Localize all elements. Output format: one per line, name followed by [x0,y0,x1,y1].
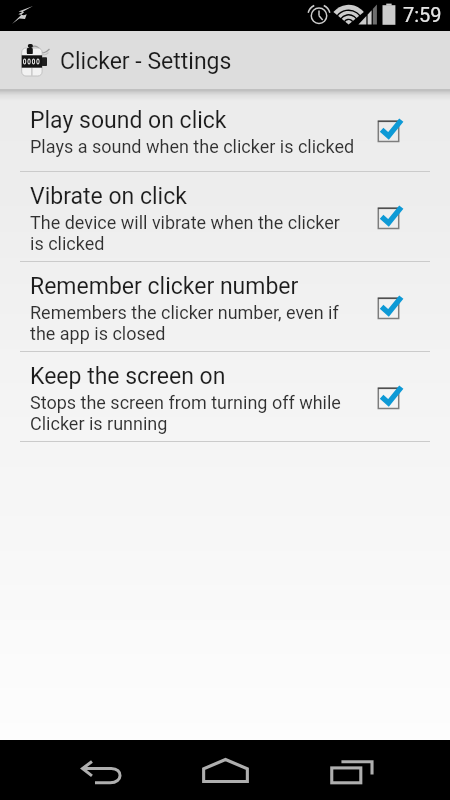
staticText: Clicker is running [30,413,168,434]
staticText: Vibrate on click [30,183,187,210]
staticText: Plays a sound when the clicker is clicke… [30,136,355,157]
staticText: Stops the screen from turning off while [30,392,341,413]
button[interactable]: Toggle setting [368,110,410,152]
button[interactable]: Keep the screen on [0,352,450,441]
staticText: 7:59 [403,3,442,26]
staticText: Clicker - Settings [60,48,232,75]
button[interactable]: Vibrate on click [0,172,450,261]
button[interactable]: Play sound on click [0,89,450,171]
button[interactable]: Recent apps [324,744,380,800]
button[interactable]: Toggle setting [368,287,410,329]
button[interactable]: Back [74,744,130,800]
staticText: the app is closed [30,323,166,344]
button[interactable]: Toggle setting [368,197,410,239]
staticText: The device will vibrate when the clicker [30,212,340,233]
staticText: Remember clicker number [30,273,299,300]
staticText: Remembers the clicker number, even if [30,302,339,323]
button[interactable]: Home [197,742,253,798]
staticText: Play sound on click [30,107,227,134]
staticText: is clicked [30,233,105,254]
button[interactable]: Toggle setting [368,377,410,419]
button[interactable]: Remember clicker number [0,262,450,351]
staticText: Keep the screen on [30,363,226,390]
